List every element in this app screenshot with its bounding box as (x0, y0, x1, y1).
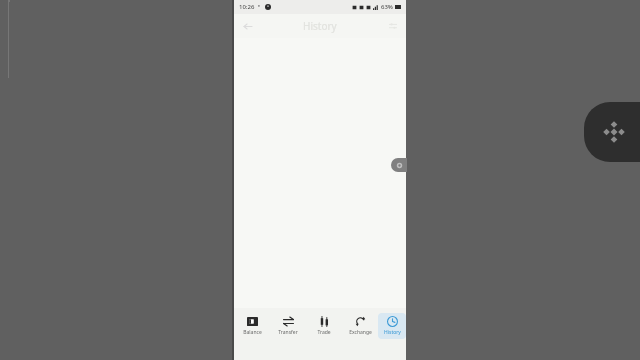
staticText: Transfer (278, 329, 298, 336)
button[interactable]: Filter (384, 17, 402, 35)
staticText: Trade (317, 329, 331, 336)
button[interactable]: Open panel (391, 158, 407, 172)
button[interactable]: Trade (306, 313, 342, 339)
staticText: History (303, 19, 337, 33)
staticText: History (384, 329, 401, 336)
button[interactable]: Exchange (342, 313, 378, 339)
button[interactable]: History (378, 313, 406, 339)
button[interactable]: Back (238, 17, 256, 35)
staticText: Balance (243, 329, 262, 336)
staticText: 10:26 (239, 3, 255, 11)
button[interactable]: Transfer (270, 313, 306, 339)
button[interactable]: Balance (234, 313, 270, 339)
staticText: Exchange (349, 329, 372, 336)
staticText: 63% (381, 3, 393, 11)
button[interactable]: Binance (584, 102, 640, 162)
